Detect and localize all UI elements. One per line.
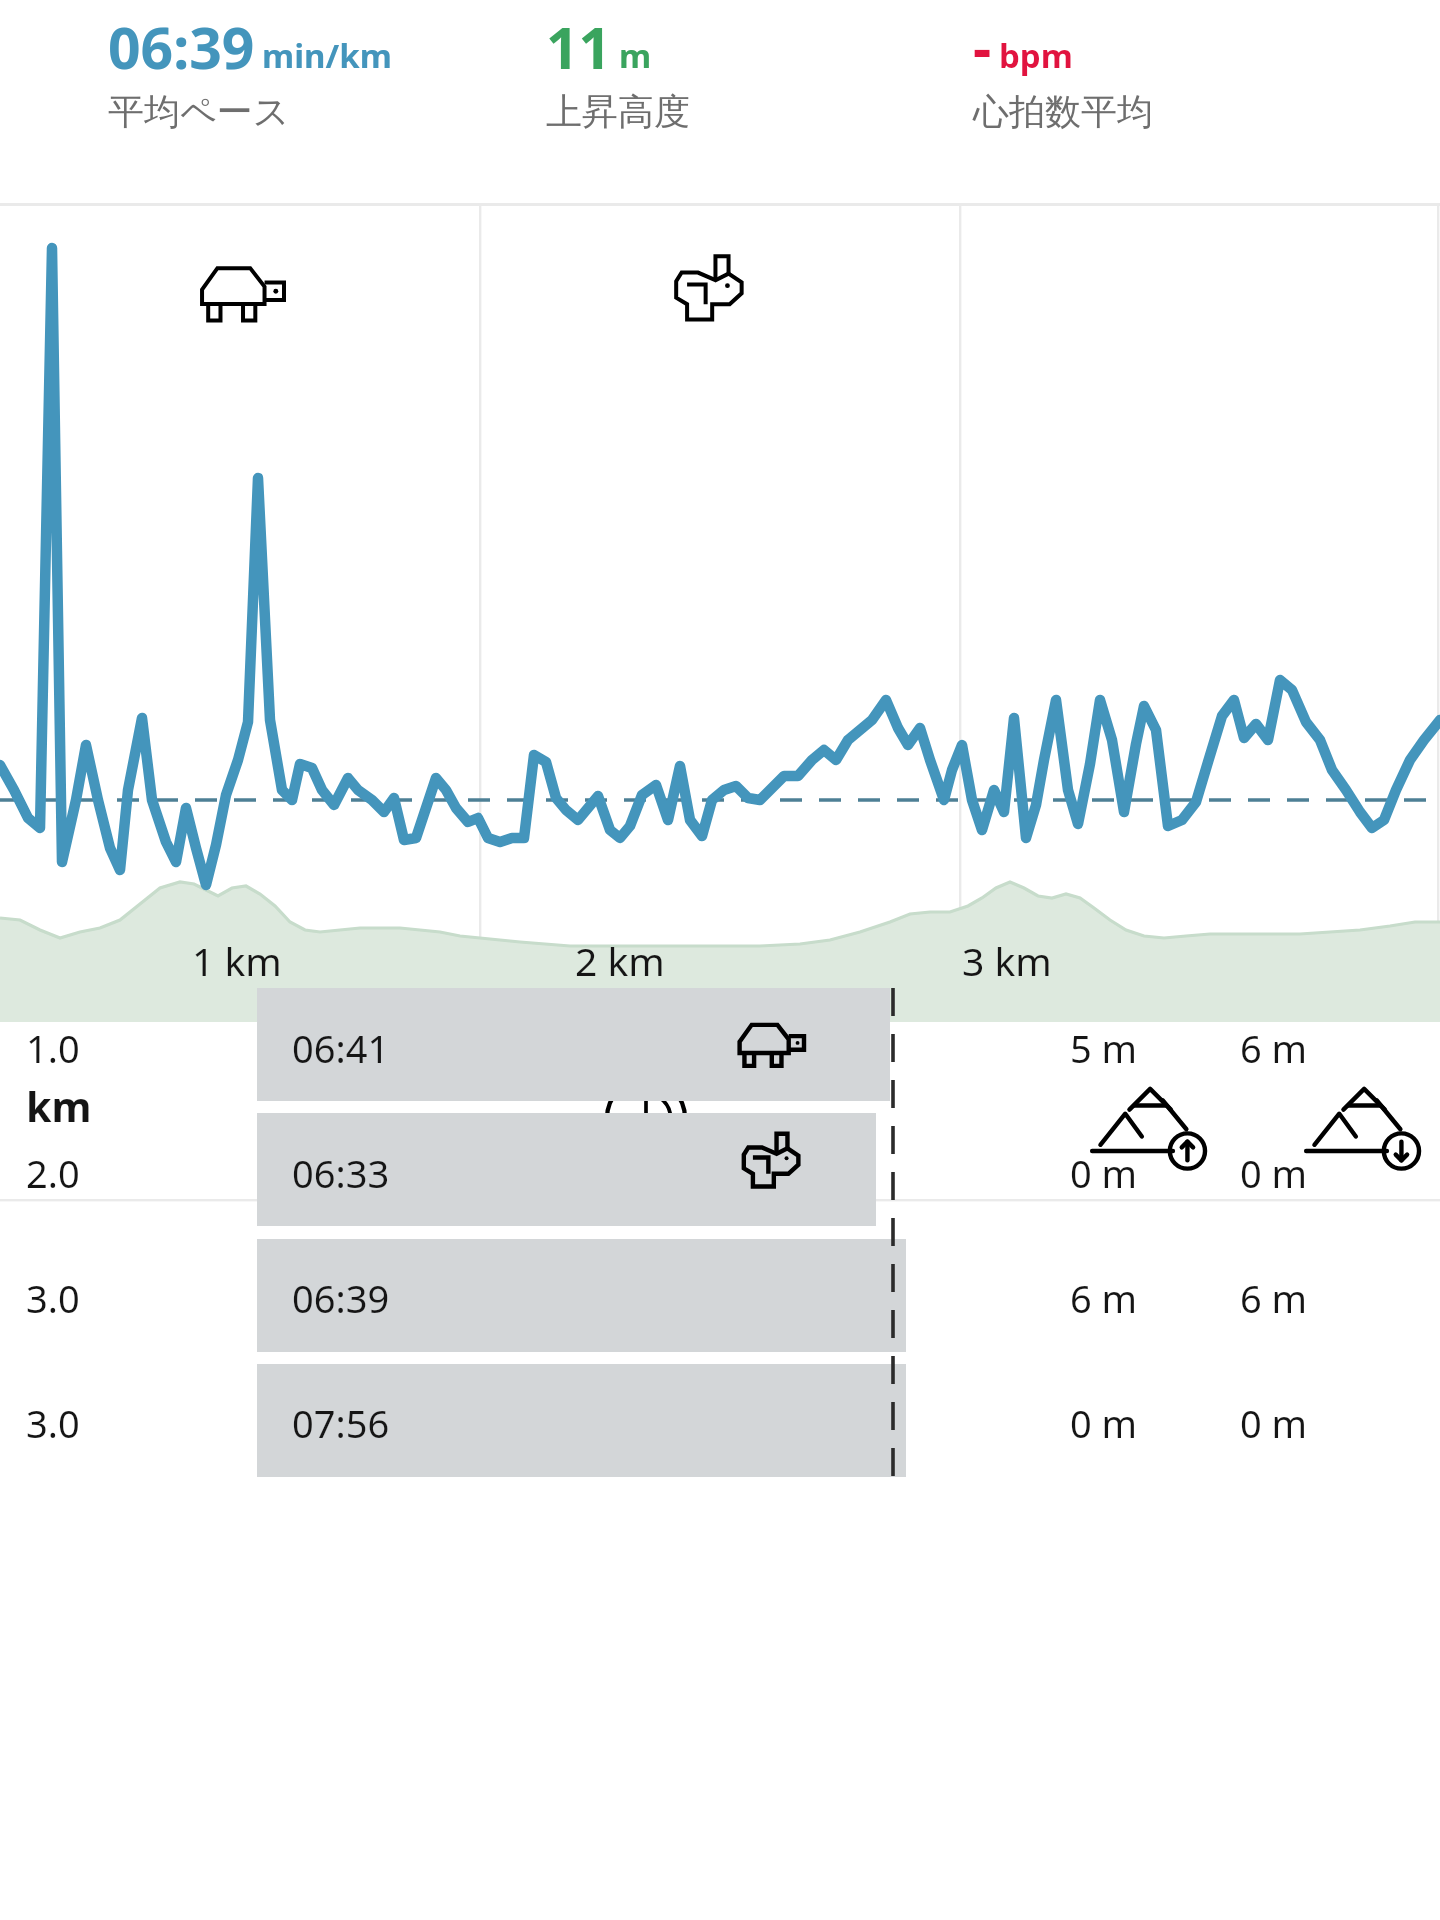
- staticText: 0 m: [1070, 1147, 1138, 1199]
- button[interactable]: [0, 1238, 1440, 1360]
- staticText: 0 m: [1240, 1147, 1308, 1199]
- staticText: m: [619, 33, 652, 78]
- staticText: 6 m: [1240, 1272, 1308, 1324]
- staticText: 心拍数平均: [973, 89, 1153, 134]
- staticText: 5 m: [1070, 1022, 1138, 1074]
- button[interactable]: Pace and elevation chart: [0, 206, 1440, 1022]
- staticText: 0 m: [1240, 1397, 1308, 1449]
- staticText: 06:39: [292, 1272, 390, 1324]
- staticText: min/km: [262, 33, 392, 78]
- staticText: 06:33: [292, 1147, 390, 1199]
- staticText: 11: [546, 8, 612, 86]
- button[interactable]: [0, 1363, 1440, 1485]
- staticText: 1.0: [26, 1022, 80, 1074]
- staticText: 2.0: [26, 1147, 80, 1199]
- staticText: 06:39: [108, 8, 255, 86]
- staticText: 6 m: [1070, 1272, 1138, 1324]
- staticText: 3.0: [26, 1272, 80, 1324]
- staticText: 6 m: [1240, 1022, 1308, 1074]
- button[interactable]: [0, 1113, 1440, 1235]
- staticText: 07:56: [292, 1397, 390, 1449]
- staticText: 0 m: [1070, 1397, 1138, 1449]
- staticText: bpm: [999, 33, 1073, 78]
- button[interactable]: Elevation gain: [480, 0, 960, 160]
- button[interactable]: [0, 988, 1440, 1110]
- staticText: -: [973, 8, 992, 86]
- staticText: 平均ペース: [108, 89, 290, 134]
- button[interactable]: Average pace: [0, 0, 480, 160]
- staticText: 06:41: [292, 1022, 390, 1074]
- staticText: 上昇高度: [546, 89, 690, 134]
- staticText: 3.0: [26, 1397, 80, 1449]
- staticText: 1 km: [192, 934, 282, 987]
- staticText: km: [26, 1078, 92, 1134]
- button[interactable]: Average heart rate: [960, 0, 1440, 160]
- staticText: 3 km: [962, 934, 1052, 987]
- staticText: 2 km: [575, 934, 665, 987]
